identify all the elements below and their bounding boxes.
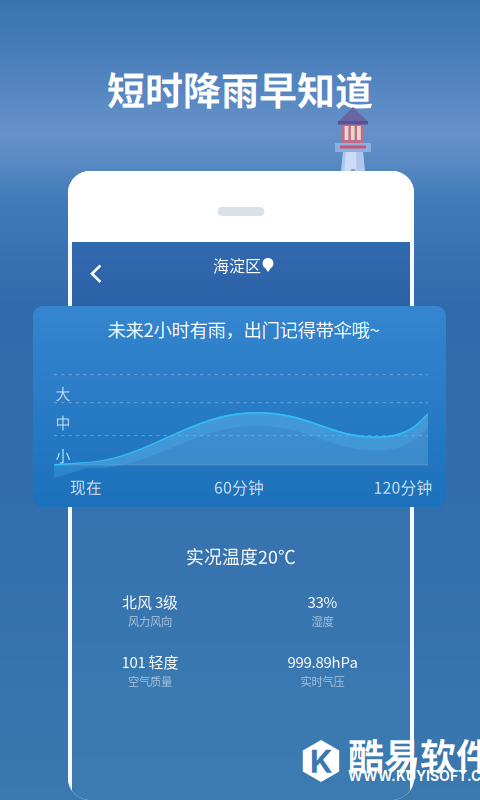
staticText: 风力风向 xyxy=(128,613,172,629)
staticText: 海淀区 xyxy=(213,253,261,277)
staticText: 60分钟 xyxy=(214,476,264,498)
staticText: 999.89hPa xyxy=(287,651,357,672)
staticText: 北风 3级 xyxy=(122,591,178,612)
staticText: 中 xyxy=(55,411,70,433)
staticText: K xyxy=(310,742,332,780)
staticText: 33% xyxy=(307,591,337,612)
staticText: 实时气压 xyxy=(300,673,344,689)
button[interactable]: Back xyxy=(75,251,117,297)
staticText: 120分钟 xyxy=(373,476,432,498)
staticText: 现在 xyxy=(70,476,102,498)
staticText: 实况温度20℃ xyxy=(186,543,296,569)
staticText: 小 xyxy=(55,444,70,466)
staticText: 101 轻度 xyxy=(121,651,178,672)
staticText: 空气质量 xyxy=(128,673,172,689)
staticText: 大 xyxy=(55,382,70,404)
staticText: 短时降雨早知道 xyxy=(107,60,373,115)
staticText: 未来2小时有雨，出门记得带伞哦~ xyxy=(107,316,379,342)
staticText: 湿度 xyxy=(311,613,333,629)
staticText: 酷易软件园 xyxy=(348,728,480,780)
staticText: WWW.KUYISOFT.COM xyxy=(348,767,480,784)
